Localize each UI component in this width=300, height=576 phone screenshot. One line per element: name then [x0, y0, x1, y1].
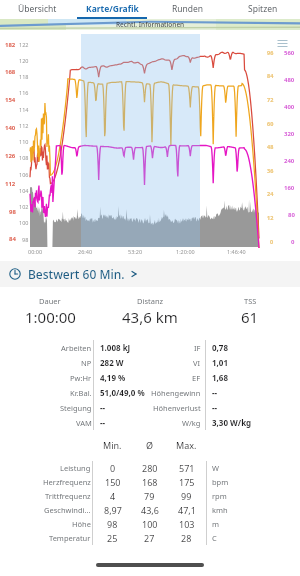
staticText: 320 — [284, 130, 295, 138]
staticText: Dauer — [39, 296, 61, 306]
staticText: 36 — [267, 167, 274, 174]
staticText: 168 — [142, 476, 158, 488]
staticText: 1:20:00 — [176, 248, 195, 255]
staticText: 120 — [19, 57, 29, 64]
staticText: 3,30 W/kg — [212, 417, 252, 428]
staticText: 112 — [19, 122, 29, 129]
staticText: 118 — [19, 73, 29, 80]
staticText: 25 — [107, 532, 118, 544]
staticText: 106 — [19, 171, 29, 178]
staticText: m — [212, 519, 220, 529]
staticText: TSS — [244, 296, 257, 306]
staticText: 0,78 — [212, 342, 229, 353]
staticText: 53:20 — [128, 248, 143, 255]
staticText: Arbeiten — [61, 343, 92, 353]
staticText: 28 — [181, 532, 192, 544]
staticText: Ø — [146, 439, 154, 451]
staticText: 60 — [267, 120, 274, 127]
staticText: 280 — [142, 462, 158, 474]
staticText: NP — [81, 358, 92, 368]
staticText: Pw:Hr — [70, 373, 92, 383]
button[interactable]: Distanz — [100, 296, 200, 327]
button[interactable]: Dauer — [0, 296, 100, 327]
staticText: 560 — [284, 49, 295, 57]
staticText: Trittfrequenz — [45, 491, 91, 501]
staticText: 98 — [9, 208, 16, 216]
staticText: -- — [100, 417, 106, 428]
staticText: EF — [192, 373, 201, 383]
staticText: 00:00 — [28, 248, 43, 255]
staticText: Temperatur — [49, 533, 91, 543]
staticText: 43,6 — [141, 504, 159, 516]
staticText: 100 — [142, 518, 158, 530]
staticText: 150 — [105, 476, 121, 488]
staticText: 80 — [288, 211, 295, 219]
staticText: 99 — [181, 490, 192, 502]
staticText: W/kg — [182, 418, 201, 428]
staticText: 114 — [19, 106, 29, 113]
button[interactable]: Karte/Grafik — [75, 0, 150, 17]
staticText: Karte/Grafik — [86, 3, 139, 15]
staticText: Runden — [172, 3, 204, 15]
staticText: 84 — [267, 72, 274, 79]
staticText: 282 W — [100, 357, 124, 368]
staticText: 168 — [5, 68, 16, 76]
staticText: 72 — [267, 96, 274, 103]
staticText: 47,1 — [178, 504, 196, 516]
staticText: 112 — [5, 180, 16, 188]
staticText: 160 — [284, 184, 295, 192]
staticText: 84 — [9, 235, 16, 243]
staticText: 12 — [267, 214, 274, 221]
staticText: 98 — [22, 236, 29, 243]
staticText: Geschwindi... — [44, 505, 91, 515]
staticText: 182 — [5, 41, 16, 49]
staticText: Herzfrequenz — [43, 477, 91, 487]
staticText: -- — [212, 402, 218, 413]
staticText: bpm — [212, 477, 229, 487]
button[interactable]: Runden — [150, 0, 225, 17]
button[interactable]: Spitzen — [225, 0, 300, 17]
staticText: 1,01 — [212, 357, 229, 368]
staticText: 4,19 % — [100, 372, 126, 383]
staticText: Leistung — [60, 463, 91, 473]
staticText: 0 — [110, 462, 116, 474]
staticText: Rechtl. Informationen — [116, 20, 185, 29]
button[interactable]: Bestwert 60 Min. — [0, 261, 300, 287]
staticText: W — [212, 463, 219, 473]
staticText: 122 — [19, 41, 29, 48]
staticText: 43,6 km — [122, 307, 178, 327]
staticText: 108 — [19, 154, 29, 161]
staticText: Übersicht — [18, 3, 57, 15]
staticText: 51,0/49,0 % — [100, 387, 145, 398]
staticText: rpm — [212, 491, 227, 501]
staticText: Höhenverlust — [153, 403, 201, 413]
staticText: 116 — [19, 89, 29, 96]
staticText: 8,97 — [104, 504, 122, 516]
button[interactable]: Übersicht — [0, 0, 75, 17]
button[interactable]: TSS — [200, 296, 300, 327]
staticText: 4 — [110, 490, 116, 502]
button[interactable]: Legende — [277, 39, 288, 50]
staticText: 27 — [144, 532, 155, 544]
staticText: -- — [212, 387, 218, 398]
staticText: 96 — [267, 49, 274, 56]
staticText: Max. — [176, 439, 197, 451]
staticText: 571 — [179, 462, 195, 474]
staticText: Höhe — [72, 519, 91, 529]
staticText: 126 — [5, 152, 16, 160]
staticText: 100 — [19, 219, 29, 226]
staticText: -- — [100, 402, 106, 413]
staticText: Kr.Bal. — [70, 388, 92, 398]
staticText: Höhengewinn — [151, 388, 201, 398]
staticText: 1.008 kJ — [100, 342, 131, 353]
staticText: 480 — [284, 76, 295, 84]
staticText: IF — [194, 343, 201, 353]
staticText: Spitzen — [248, 3, 278, 15]
staticText: 26:40 — [78, 248, 93, 255]
staticText: C — [212, 533, 217, 543]
staticText: 104 — [19, 187, 29, 194]
staticText: 79 — [144, 490, 155, 502]
staticText: 103 — [179, 518, 195, 530]
staticText: VAM — [76, 418, 92, 428]
staticText: 175 — [179, 476, 195, 488]
